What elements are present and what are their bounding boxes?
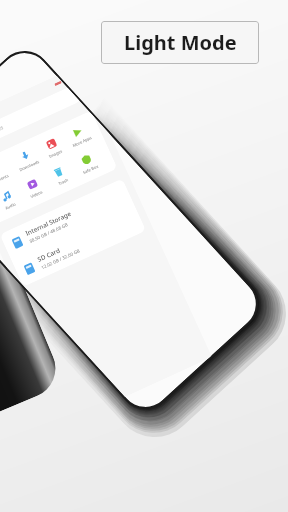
staticText: SD Card [34,241,64,270]
button[interactable]: Internal Storage [0,148,141,291]
button[interactable]: More Apps [59,115,99,155]
staticText: Search files [0,117,6,149]
staticText: Audio [3,198,18,213]
staticText: Trash [56,174,71,189]
staticText: 12.02 GB / 32.00 GB [39,238,83,280]
button[interactable]: Safe Box [70,144,106,181]
button[interactable]: Documents [0,153,17,194]
staticText: Videos [28,185,45,202]
staticText: Downloads [17,154,41,177]
button[interactable]: Audio [0,183,24,216]
staticText: Light Mode [124,29,237,56]
staticText: Internal Storage [22,198,75,249]
staticText: 38.50 GB / 48.68 GB [27,212,71,254]
staticText: Documents [0,167,11,192]
staticText: More Apps [70,130,94,153]
button[interactable]: Search files [0,60,81,184]
button[interactable]: Images [35,130,70,164]
staticText: Images [47,145,64,162]
button[interactable]: Downloads [6,139,47,180]
button[interactable]: SD Card [6,174,153,317]
button[interactable]: Light Mode [101,21,259,64]
button[interactable]: Trash [44,159,76,192]
staticText: Safe Box [81,159,101,179]
button[interactable]: Videos [17,171,51,204]
